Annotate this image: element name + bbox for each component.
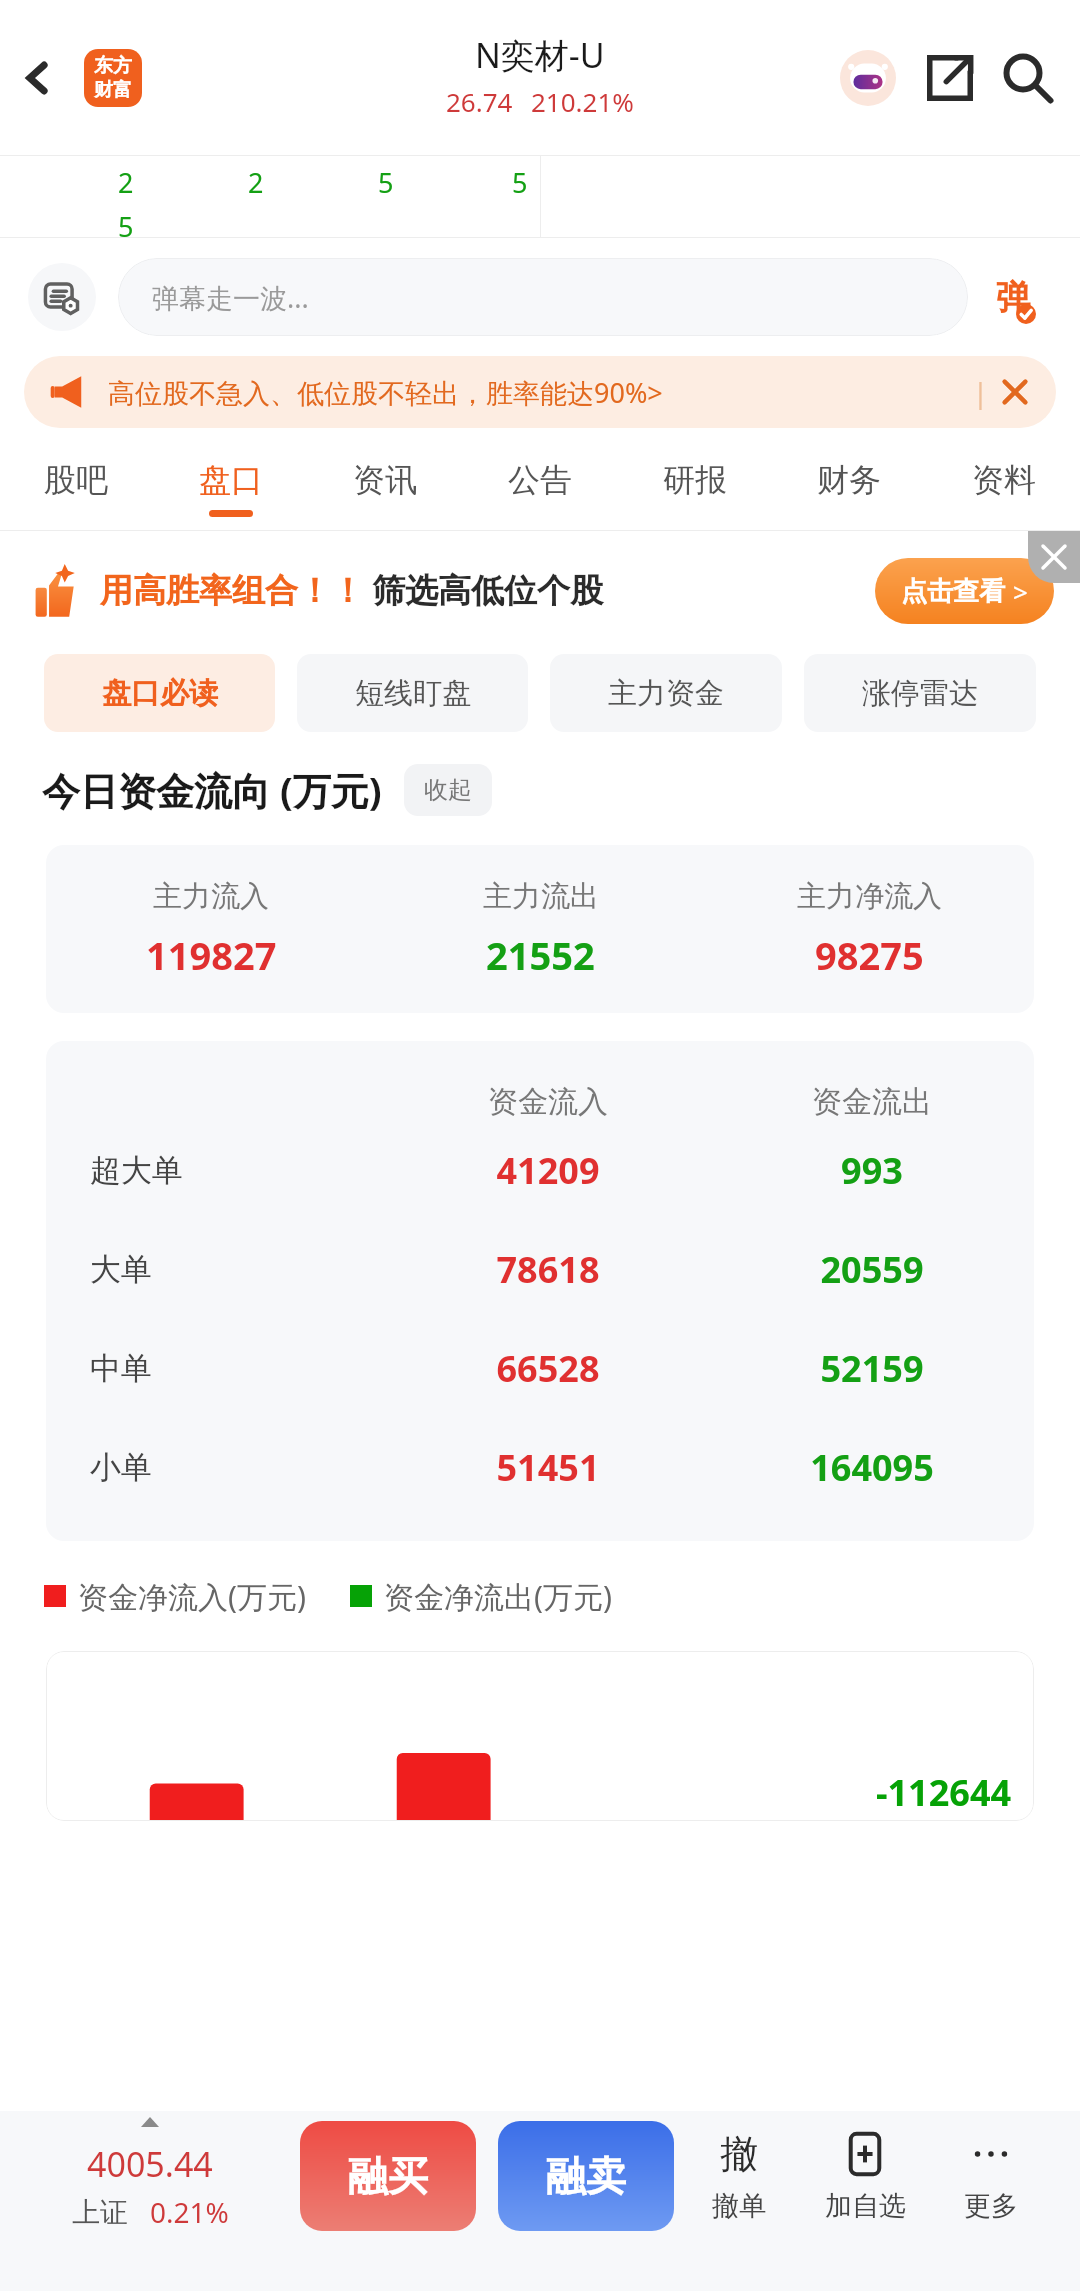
staticText: -112644: [876, 1768, 1012, 1817]
staticText: 5: [118, 208, 134, 237]
staticText: 公告: [508, 460, 572, 500]
staticText: 4005.44: [87, 2141, 213, 2187]
staticText: 融买: [348, 2151, 428, 2201]
staticText: 主力资金: [608, 675, 724, 712]
button[interactable]: 加自选: [802, 2129, 928, 2223]
staticText: 用高胜率组合！！: [100, 570, 364, 612]
staticText: 高位股不急入、低位股不轻出，胜率能达90%>: [108, 374, 663, 411]
staticText: |: [973, 374, 988, 411]
button[interactable]: 资料: [966, 460, 1042, 517]
staticText: 26.74: [446, 84, 513, 119]
staticText: 小单: [90, 1448, 386, 1487]
staticText: 撤: [720, 2130, 758, 2178]
button[interactable]: 主力资金: [550, 654, 782, 732]
staticText: 点击查看: [901, 575, 1005, 608]
button[interactable]: 融卖: [498, 2121, 674, 2231]
staticText: 78618: [386, 1245, 710, 1294]
staticText: 993: [710, 1146, 1034, 1195]
button[interactable]: Send danmu: [974, 258, 1052, 336]
button[interactable]: East Money: [84, 49, 142, 107]
button[interactable]: 公告: [502, 460, 578, 517]
staticText: 主力流出: [483, 878, 599, 915]
staticText: 财务: [817, 460, 881, 500]
button[interactable]: 用高胜率组合！！: [30, 531, 1054, 651]
button[interactable]: 股吧: [38, 460, 114, 517]
staticText: 2: [118, 164, 134, 201]
staticText: 119827: [146, 929, 277, 981]
staticText: 0.21%: [150, 2193, 229, 2231]
staticText: 短线盯盘: [355, 675, 471, 712]
staticText: 210.21%: [531, 84, 634, 119]
staticText: 东方: [94, 54, 132, 78]
staticText: 盘口: [199, 460, 263, 500]
staticText: 资金净流出(万元): [384, 1576, 612, 1617]
staticText: 主力净流入: [797, 878, 942, 915]
staticText: 中单: [90, 1349, 386, 1388]
staticText: 资讯: [353, 460, 417, 500]
staticText: 大单: [90, 1250, 386, 1289]
button[interactable]: Search: [992, 42, 1064, 114]
staticText: 5: [378, 164, 394, 201]
staticText: 筛选高低位个股: [372, 570, 603, 612]
staticText: 资金流入: [386, 1083, 710, 1121]
other: Close: [1002, 379, 1028, 405]
staticText: 164095: [710, 1443, 1034, 1492]
staticText: 超大单: [90, 1151, 386, 1190]
button[interactable]: 资讯: [347, 460, 423, 517]
staticText: >: [1013, 574, 1028, 609]
staticText: 2: [248, 164, 264, 201]
button[interactable]: Back: [6, 46, 70, 110]
staticText: 5: [512, 164, 528, 201]
staticText: 98275: [815, 929, 924, 981]
button[interactable]: -112644: [46, 1651, 1034, 1821]
button[interactable]: 短线盯盘: [297, 654, 528, 732]
button[interactable]: 资金流入: [46, 1041, 1034, 1541]
staticText: 20559: [710, 1245, 1034, 1294]
button[interactable]: 点击查看: [901, 558, 1028, 624]
staticText: N奕材-U: [475, 32, 605, 78]
staticText: 涨停雷达: [862, 675, 978, 712]
staticText: 弹: [996, 276, 1030, 319]
staticText: 66528: [386, 1344, 710, 1393]
staticText: 财富: [94, 78, 132, 102]
staticText: 51451: [386, 1443, 710, 1492]
button[interactable]: 收起: [424, 764, 472, 816]
staticText: 撤单: [712, 2189, 766, 2223]
staticText: 更多: [964, 2189, 1018, 2223]
staticText: 41209: [386, 1146, 710, 1195]
staticText: 股吧: [44, 460, 108, 500]
button[interactable]: 弹幕走一波...: [118, 258, 968, 336]
button[interactable]: 4005.44: [0, 2121, 300, 2231]
staticText: 主力流入: [153, 878, 269, 915]
button[interactable]: 高位股不急入、低位股不轻出，胜率能达90%>: [24, 356, 1056, 428]
button[interactable]: 涨停雷达: [804, 654, 1036, 732]
button[interactable]: Close ad: [1028, 531, 1080, 583]
staticText: 盘口必读: [102, 675, 218, 712]
staticText: 今日资金流向 (万元): [42, 764, 382, 816]
button[interactable]: Share: [914, 42, 986, 114]
staticText: 收起: [424, 775, 472, 805]
staticText: 融卖: [546, 2151, 626, 2201]
button[interactable]: 撤: [676, 2129, 802, 2223]
staticText: 资金流出: [710, 1083, 1034, 1121]
button[interactable]: 主力流入: [46, 845, 1034, 1013]
button[interactable]: 盘口必读: [44, 654, 275, 732]
staticText: 资料: [972, 460, 1036, 500]
button[interactable]: 盘口: [193, 460, 269, 517]
staticText: 21552: [486, 929, 595, 981]
button[interactable]: 更多: [928, 2129, 1054, 2223]
staticText: 资金净流入(万元): [78, 1576, 306, 1617]
staticText: 加自选: [825, 2189, 906, 2223]
button[interactable]: 融买: [300, 2121, 476, 2231]
staticText: 52159: [710, 1344, 1034, 1393]
staticText: 上证: [72, 2195, 128, 2230]
button[interactable]: 财务: [811, 460, 887, 517]
staticText: 弹幕走一波...: [152, 279, 309, 316]
button[interactable]: AI assistant: [832, 42, 904, 114]
button[interactable]: 研报: [657, 460, 733, 517]
staticText: 研报: [663, 460, 727, 500]
button[interactable]: Danmu settings: [28, 263, 96, 331]
